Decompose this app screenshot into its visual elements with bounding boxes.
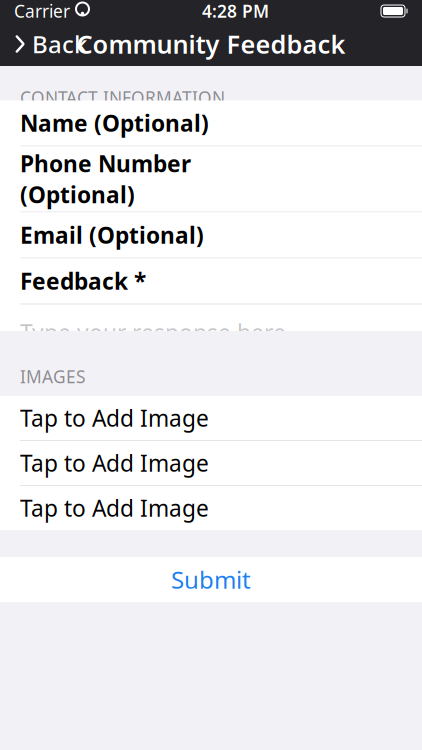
staticText: Back: [32, 28, 87, 60]
button[interactable]: Tap to Add Image: [0, 441, 422, 485]
staticText: Phone Number: [20, 148, 191, 178]
staticText: Type your response here: [20, 317, 286, 348]
staticText: Tap to Add Image: [20, 448, 209, 478]
staticText: 4:28 PM: [202, 0, 269, 22]
button[interactable]: Tap to Add Image: [0, 396, 422, 440]
staticText: Feedback *: [20, 266, 146, 296]
staticText: Submit: [171, 564, 251, 595]
staticText: (Optional): [20, 179, 135, 210]
button[interactable]: Tap to Add Image: [0, 486, 422, 530]
staticText: Tap to Add Image: [20, 493, 209, 523]
staticText: Email (Optional): [20, 220, 204, 250]
staticText: Name (Optional): [20, 108, 209, 138]
staticText: Community Feedback: [76, 27, 345, 61]
staticText: CONTACT INFORMATION: [20, 86, 225, 109]
staticText: IMAGES: [20, 365, 86, 388]
button[interactable]: Submit: [0, 557, 422, 602]
button[interactable]: Email (Optional): [0, 212, 422, 257]
button[interactable]: Phone Number: [0, 146, 422, 211]
staticText: Tap to Add Image: [20, 403, 209, 433]
staticText: Carrier: [14, 0, 70, 22]
button[interactable]: Feedback *: [0, 258, 422, 303]
button[interactable]: Name (Optional): [0, 100, 422, 145]
button[interactable]: Back: [0, 22, 101, 66]
